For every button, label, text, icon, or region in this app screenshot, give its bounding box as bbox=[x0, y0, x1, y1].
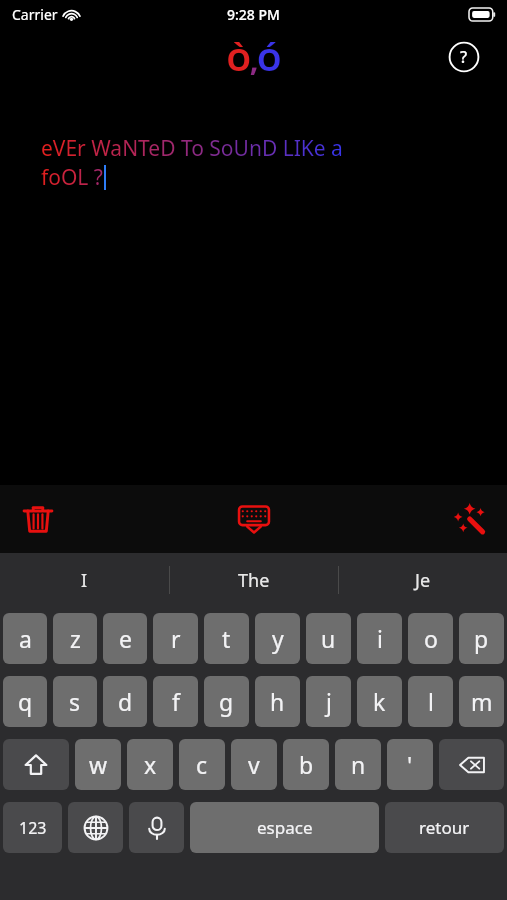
button[interactable]: I bbox=[0, 553, 169, 607]
staticText: b bbox=[299, 749, 314, 780]
button[interactable]: e bbox=[103, 613, 147, 664]
staticText: j bbox=[326, 686, 332, 717]
staticText: p bbox=[474, 623, 489, 654]
staticText: e bbox=[119, 623, 132, 654]
staticText: y bbox=[272, 623, 284, 654]
staticText: ' bbox=[407, 749, 413, 780]
button[interactable]: Help bbox=[447, 40, 481, 74]
button[interactable]: j bbox=[306, 676, 351, 727]
staticText: Ò,Ó bbox=[226, 38, 282, 80]
staticText: x bbox=[144, 749, 157, 780]
staticText: m bbox=[471, 686, 493, 717]
staticText: 123 bbox=[19, 817, 47, 839]
button[interactable]: w bbox=[75, 739, 121, 790]
button[interactable]: l bbox=[408, 676, 453, 727]
button[interactable]: r bbox=[153, 613, 198, 664]
staticText: f bbox=[172, 686, 180, 717]
button[interactable]: n bbox=[335, 739, 381, 790]
staticText: t bbox=[222, 623, 231, 654]
button[interactable]: a bbox=[3, 613, 47, 664]
staticText: k bbox=[373, 686, 386, 717]
staticText: v bbox=[248, 749, 260, 780]
staticText: i bbox=[377, 623, 383, 654]
button[interactable]: eVEr WaNTeD To SoUnD LIKe a bbox=[0, 85, 507, 485]
button[interactable]: Backspace bbox=[439, 739, 504, 790]
button[interactable]: Hide keyboard bbox=[226, 491, 282, 547]
staticText: l bbox=[428, 686, 434, 717]
button[interactable]: retour bbox=[385, 802, 504, 853]
button[interactable]: t bbox=[204, 613, 249, 664]
staticText: r bbox=[171, 623, 181, 654]
staticText: q bbox=[18, 686, 33, 717]
button[interactable]: The bbox=[170, 553, 338, 607]
button[interactable]: f bbox=[153, 676, 198, 727]
staticText: n bbox=[351, 749, 366, 780]
button[interactable]: ' bbox=[387, 739, 433, 790]
button[interactable]: k bbox=[357, 676, 402, 727]
button[interactable]: g bbox=[204, 676, 249, 727]
staticText: z bbox=[70, 623, 81, 654]
button[interactable]: u bbox=[306, 613, 351, 664]
staticText: o bbox=[424, 623, 438, 654]
staticText: h bbox=[270, 686, 285, 717]
staticText: eVEr WaNTeD To SoUnD LIKe a bbox=[41, 134, 343, 163]
staticText: retour bbox=[419, 816, 470, 839]
button[interactable]: 123 bbox=[3, 802, 62, 853]
button[interactable]: Delete bbox=[10, 491, 66, 547]
button[interactable]: c bbox=[179, 739, 225, 790]
staticText: d bbox=[118, 686, 133, 717]
staticText: g bbox=[219, 686, 234, 717]
staticText: ? bbox=[460, 46, 468, 68]
button[interactable]: espace bbox=[190, 802, 379, 853]
staticText: Carrier bbox=[12, 5, 58, 24]
button[interactable]: s bbox=[53, 676, 97, 727]
button[interactable]: q bbox=[3, 676, 47, 727]
button[interactable]: d bbox=[103, 676, 147, 727]
button[interactable]: Shift bbox=[3, 739, 69, 790]
staticText: c bbox=[196, 749, 208, 780]
staticText: 9:28 PM bbox=[227, 5, 280, 24]
button[interactable]: b bbox=[283, 739, 329, 790]
button[interactable]: m bbox=[459, 676, 504, 727]
button[interactable]: y bbox=[255, 613, 300, 664]
staticText: I bbox=[81, 568, 88, 593]
staticText: Je bbox=[415, 568, 431, 593]
button[interactable]: v bbox=[231, 739, 277, 790]
button[interactable]: Je bbox=[339, 553, 507, 607]
staticText: u bbox=[321, 623, 336, 654]
button[interactable]: h bbox=[255, 676, 300, 727]
button[interactable]: o bbox=[408, 613, 453, 664]
staticText: s bbox=[69, 686, 81, 717]
button[interactable]: p bbox=[459, 613, 504, 664]
button[interactable]: x bbox=[127, 739, 173, 790]
button[interactable]: Change keyboard bbox=[68, 802, 123, 853]
staticText: espace bbox=[257, 816, 313, 839]
staticText: w bbox=[89, 749, 108, 780]
button[interactable]: i bbox=[357, 613, 402, 664]
button[interactable]: Magic bbox=[441, 491, 497, 547]
staticText: a bbox=[19, 623, 32, 654]
staticText: foOL ? bbox=[41, 163, 103, 192]
staticText: The bbox=[238, 568, 270, 593]
button[interactable]: Dictate bbox=[129, 802, 184, 853]
button[interactable]: z bbox=[53, 613, 97, 664]
